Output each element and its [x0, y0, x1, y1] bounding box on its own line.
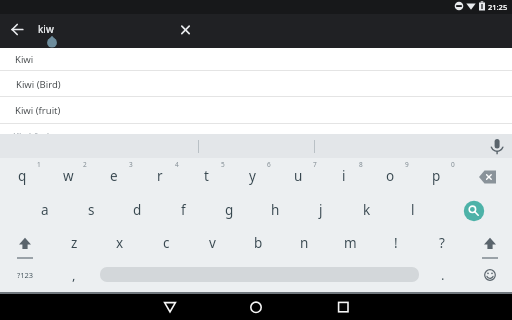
button[interactable]: Kiwi (Bird) — [13, 74, 63, 94]
button[interactable]: a — [25, 195, 65, 225]
staticText: o — [386, 167, 395, 185]
staticText: 3 — [129, 160, 133, 169]
staticText: e — [110, 167, 118, 185]
button[interactable] — [454, 191, 494, 231]
button[interactable] — [140, 294, 200, 320]
staticText: b — [254, 234, 263, 252]
button[interactable]: ! — [376, 228, 416, 258]
staticText: a — [41, 201, 49, 219]
button[interactable]: i — [324, 161, 364, 191]
staticText: Kiwi (Bird) — [16, 78, 61, 91]
staticText: d — [133, 201, 142, 219]
staticText: x — [116, 234, 124, 252]
button[interactable]: l — [393, 195, 433, 225]
staticText: j — [319, 201, 323, 219]
staticText: Kiwi — [15, 53, 34, 66]
staticText: r — [157, 167, 163, 185]
staticText: t — [204, 167, 209, 185]
button[interactable]: k — [347, 195, 387, 225]
staticText: c — [163, 234, 170, 252]
staticText: y — [249, 167, 256, 185]
staticText: g — [225, 201, 234, 219]
button[interactable]: g — [209, 195, 249, 225]
button[interactable]: o — [370, 161, 410, 191]
staticText: ?123 — [17, 270, 34, 280]
staticText: kiw — [38, 22, 54, 36]
button[interactable] — [313, 294, 373, 320]
staticText: 4 — [175, 160, 179, 169]
staticText: n — [300, 234, 309, 252]
staticText: 9 — [405, 160, 409, 169]
button[interactable]: , — [59, 260, 89, 290]
staticText: i — [342, 167, 346, 185]
staticText: 0 — [451, 160, 455, 169]
button[interactable]: e — [94, 161, 134, 191]
staticText: 5 — [221, 160, 225, 169]
staticText: Kiwi (fruit) — [15, 104, 61, 117]
button[interactable]: q — [2, 161, 42, 191]
button[interactable]: x — [100, 228, 140, 258]
button[interactable] — [168, 14, 202, 48]
button[interactable] — [472, 228, 508, 258]
staticText: 7 — [313, 160, 317, 169]
staticText: ? — [439, 234, 445, 252]
button[interactable]: ? — [422, 228, 462, 258]
button[interactable]: b — [238, 228, 278, 258]
button[interactable]: Kiwi — [13, 49, 35, 69]
button[interactable]: r — [140, 161, 180, 191]
button[interactable]: v — [192, 228, 232, 258]
staticText: v — [209, 234, 216, 252]
button[interactable]: ?123 — [5, 260, 45, 290]
staticText: l — [411, 201, 415, 219]
staticText: h — [271, 201, 280, 219]
staticText: u — [294, 167, 303, 185]
button[interactable] — [226, 294, 286, 320]
button[interactable]: y — [232, 161, 272, 191]
staticText: ! — [394, 234, 398, 252]
staticText: q — [18, 167, 27, 185]
button[interactable]: c — [146, 228, 186, 258]
staticText: 6 — [267, 160, 271, 169]
button[interactable] — [468, 162, 508, 190]
staticText: 8 — [359, 160, 363, 169]
staticText: m — [344, 234, 357, 252]
staticText: s — [88, 201, 95, 219]
button[interactable]: s — [71, 195, 111, 225]
button[interactable]: Kiwi (fruit) — [13, 100, 63, 120]
staticText: , — [72, 266, 76, 284]
button[interactable]: t — [186, 161, 226, 191]
staticText: w — [63, 167, 74, 185]
button[interactable]: h — [255, 195, 295, 225]
staticText: . — [441, 266, 445, 284]
staticText: 21:25 — [488, 2, 508, 12]
staticText: 1 — [37, 160, 41, 169]
staticText: z — [71, 234, 78, 252]
button[interactable]: d — [117, 195, 157, 225]
button[interactable]: f — [163, 195, 203, 225]
staticText: k — [363, 201, 371, 219]
button[interactable]: p — [416, 161, 456, 191]
button[interactable]: n — [284, 228, 324, 258]
button[interactable] — [8, 228, 44, 258]
button[interactable]: z — [54, 228, 94, 258]
button[interactable]: u — [278, 161, 318, 191]
button[interactable]: w — [48, 161, 88, 191]
staticText: p — [432, 167, 441, 185]
button[interactable]: j — [301, 195, 341, 225]
staticText: f — [181, 201, 186, 219]
button[interactable] — [472, 261, 508, 289]
button[interactable] — [0, 14, 36, 48]
staticText: 2 — [83, 160, 87, 169]
staticText: Kiwi fruit — [13, 130, 53, 134]
button[interactable]: m — [330, 228, 370, 258]
button[interactable]: . — [428, 260, 458, 290]
